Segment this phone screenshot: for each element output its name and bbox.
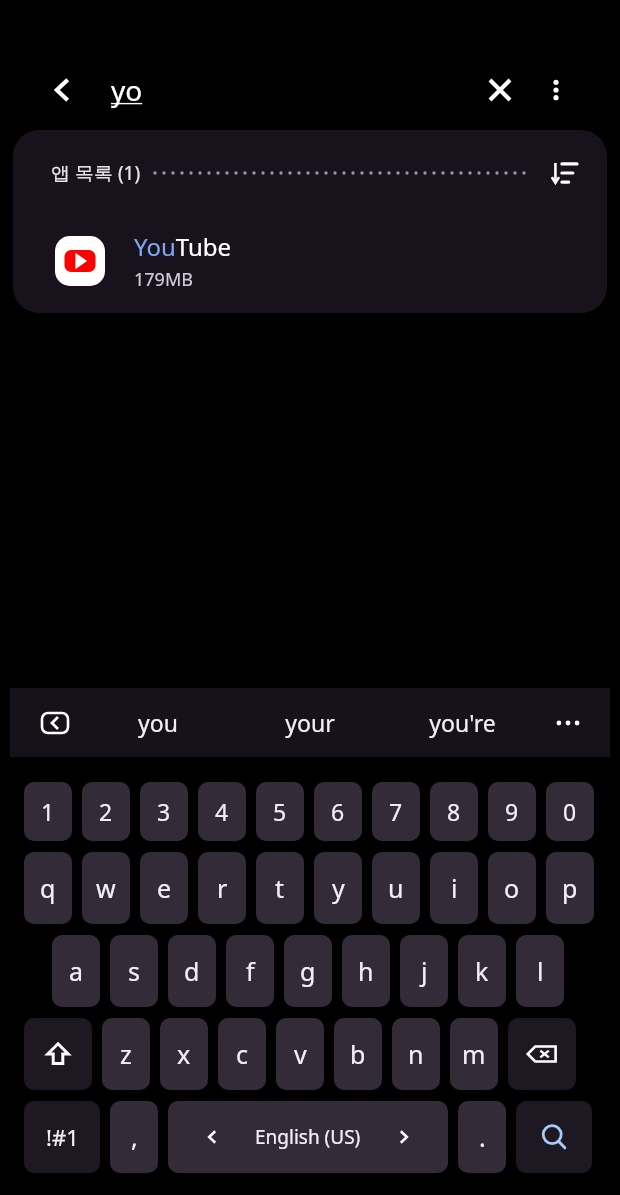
button[interactable]: e	[140, 852, 188, 924]
staticText: 2	[99, 796, 113, 827]
staticText: ,	[131, 1120, 138, 1154]
button[interactable]: n	[392, 1018, 440, 1090]
staticText: l	[537, 954, 544, 988]
staticText: your	[285, 707, 335, 738]
button[interactable]: q	[24, 852, 72, 924]
button[interactable]: Backspace	[508, 1018, 576, 1090]
staticText: 6	[331, 796, 345, 827]
staticText: t	[275, 871, 285, 905]
staticText: s	[128, 954, 140, 988]
staticText: i	[451, 871, 458, 905]
staticText: r	[217, 871, 228, 905]
staticText: 9	[505, 796, 519, 827]
staticText: g	[300, 954, 316, 988]
button[interactable]: you	[98, 688, 218, 757]
button[interactable]: 7	[372, 782, 420, 841]
staticText: 1	[41, 796, 55, 827]
staticText: 8	[447, 796, 461, 827]
button[interactable]: g	[284, 935, 332, 1007]
staticText: w	[96, 871, 116, 905]
staticText: x	[177, 1037, 191, 1071]
staticText: o	[504, 871, 520, 905]
button[interactable]: s	[110, 935, 158, 1007]
button[interactable]: r	[198, 852, 246, 924]
button[interactable]: y	[314, 852, 362, 924]
button[interactable]: 5	[256, 782, 304, 841]
staticText: k	[475, 954, 489, 988]
button[interactable]: t	[256, 852, 304, 924]
button[interactable]: m	[450, 1018, 498, 1090]
button[interactable]: x	[160, 1018, 208, 1090]
staticText: 3	[157, 796, 171, 827]
button[interactable]: Clear	[478, 68, 522, 112]
staticText: .	[479, 1120, 486, 1154]
button[interactable]: 8	[430, 782, 478, 841]
staticText: d	[184, 954, 200, 988]
staticText: v	[294, 1037, 307, 1071]
staticText: h	[358, 954, 374, 988]
staticText: 앱 목록 (1)	[51, 160, 141, 186]
staticText: a	[69, 954, 84, 988]
button[interactable]: More options	[534, 68, 578, 112]
button[interactable]: f	[226, 935, 274, 1007]
staticText: 4	[215, 796, 229, 827]
button[interactable]: English (US)	[168, 1101, 448, 1173]
button[interactable]: you're	[402, 688, 522, 757]
button[interactable]: YouTube	[13, 216, 607, 306]
button[interactable]: c	[218, 1018, 266, 1090]
staticText: c	[236, 1037, 249, 1071]
staticText: YouTube	[134, 230, 232, 263]
button[interactable]: i	[430, 852, 478, 924]
staticText: m	[462, 1037, 486, 1071]
staticText: u	[388, 871, 404, 905]
staticText: 0	[563, 796, 577, 827]
button[interactable]: 4	[198, 782, 246, 841]
button[interactable]: Sort	[543, 152, 585, 194]
staticText: 5	[273, 796, 287, 827]
staticText: 179MB	[134, 267, 193, 292]
button[interactable]: o	[488, 852, 536, 924]
staticText: p	[562, 871, 578, 905]
button[interactable]: l	[516, 935, 564, 1007]
button[interactable]: Previous	[33, 701, 77, 745]
button[interactable]: z	[102, 1018, 150, 1090]
button[interactable]: Search	[516, 1101, 592, 1173]
staticText: b	[350, 1037, 366, 1071]
button[interactable]: your	[250, 688, 370, 757]
button[interactable]: 3	[140, 782, 188, 841]
button[interactable]: a	[52, 935, 100, 1007]
button[interactable]: v	[276, 1018, 324, 1090]
staticText: you're	[429, 707, 496, 738]
button[interactable]: 2	[82, 782, 130, 841]
button[interactable]: Back	[40, 68, 84, 112]
staticText: y	[332, 871, 345, 905]
button[interactable]: u	[372, 852, 420, 924]
staticText: q	[40, 871, 56, 905]
staticText: !#1	[46, 1122, 79, 1152]
button[interactable]: More suggestions	[546, 701, 590, 745]
staticText: j	[421, 954, 428, 988]
button[interactable]: 9	[488, 782, 536, 841]
button[interactable]: 1	[24, 782, 72, 841]
button[interactable]: k	[458, 935, 506, 1007]
button[interactable]: yo	[111, 71, 143, 109]
button[interactable]: d	[168, 935, 216, 1007]
button[interactable]: b	[334, 1018, 382, 1090]
button[interactable]: !#1	[24, 1101, 100, 1173]
button[interactable]: Shift	[24, 1018, 92, 1090]
button[interactable]: 6	[314, 782, 362, 841]
staticText: English (US)	[255, 1124, 361, 1150]
button[interactable]: .	[458, 1101, 506, 1173]
button[interactable]: ,	[110, 1101, 158, 1173]
button[interactable]: j	[400, 935, 448, 1007]
staticText: e	[157, 871, 172, 905]
staticText: 7	[389, 796, 403, 827]
staticText: you	[138, 707, 178, 738]
button[interactable]: 0	[546, 782, 594, 841]
staticText: z	[120, 1037, 132, 1071]
staticText: f	[246, 954, 255, 988]
staticText: n	[408, 1037, 424, 1071]
button[interactable]: p	[546, 852, 594, 924]
button[interactable]: w	[82, 852, 130, 924]
button[interactable]: h	[342, 935, 390, 1007]
